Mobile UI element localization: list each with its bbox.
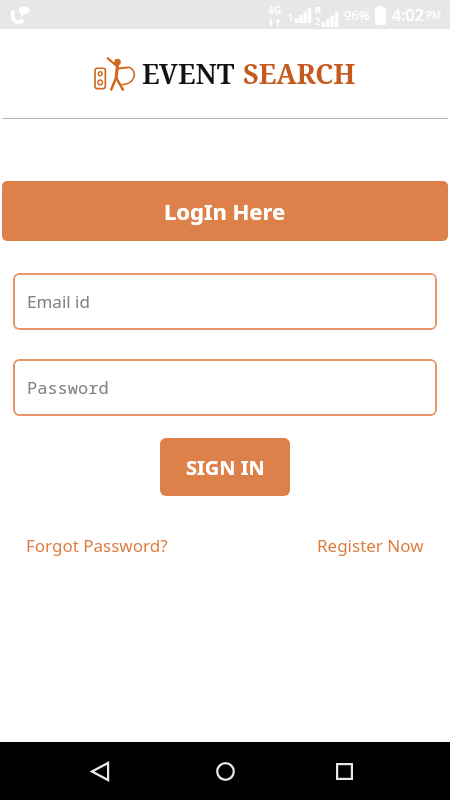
button[interactable]: Register Now [311,529,430,562]
button[interactable]: Home [202,748,248,794]
staticText: LogIn Here [164,196,286,226]
button[interactable]: Back [77,748,123,794]
staticText: Register Now [317,534,424,557]
button[interactable]: LogIn Here [2,181,448,241]
staticText: R [315,3,321,15]
staticText: SIGN IN [186,454,265,481]
button[interactable]: SIGN IN [160,438,290,496]
button[interactable]: Recent apps [321,748,367,794]
staticText: 2 [315,15,321,27]
staticText: 4:02 [392,4,424,26]
staticText: Email id [27,290,90,313]
button[interactable]: Email id [13,273,437,330]
staticText: Forgot Password? [26,534,168,557]
button[interactable]: Forgot Password? [20,529,174,562]
staticText: EVENT [142,55,235,92]
staticText: 1 [288,11,294,23]
staticText: PM [426,8,442,22]
staticText: Password [27,376,109,399]
staticText: SEARCH [243,55,356,92]
button[interactable]: Password [13,359,437,416]
staticText: 96% [344,6,370,24]
staticText: 4G [268,3,281,17]
